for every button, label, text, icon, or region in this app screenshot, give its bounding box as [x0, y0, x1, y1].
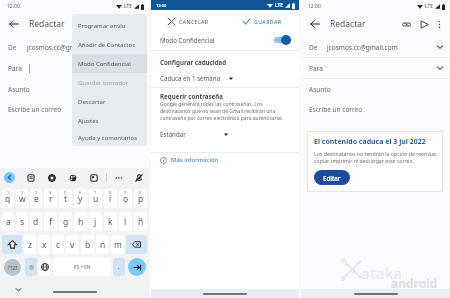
staticText: p [138, 193, 144, 205]
button[interactable]: p [134, 189, 147, 208]
button[interactable]: a [2, 212, 14, 231]
staticText: De [309, 43, 318, 52]
button[interactable]: Descartar [72, 92, 147, 111]
staticText: j [94, 216, 97, 228]
button[interactable]: Modo Confidencial [72, 54, 147, 73]
button[interactable]: t [59, 189, 72, 208]
button[interactable]: dots [113, 172, 125, 184]
button[interactable]: Modo Confidencial [151, 32, 299, 48]
button[interactable]: De [301, 37, 450, 57]
staticText: b [85, 239, 91, 251]
staticText: k [108, 216, 113, 228]
button[interactable]: Emoji [25, 258, 37, 276]
button[interactable]: Editar [314, 170, 350, 185]
button[interactable]: Para [0, 58, 149, 79]
staticText: Modo Confidencial [78, 60, 131, 68]
staticText: w [19, 193, 26, 205]
staticText: android [391, 275, 438, 291]
staticText: Escribe un correo [309, 105, 363, 114]
button[interactable]: e [30, 189, 42, 208]
button[interactable]: Comma [113, 258, 125, 276]
button[interactable]: mic [133, 172, 145, 184]
button[interactable]: u [89, 189, 102, 208]
button[interactable]: Ajustes [72, 111, 147, 130]
button[interactable]: Asunto [0, 79, 149, 100]
button[interactable]: Más información [151, 153, 219, 167]
button[interactable]: Ayuda y comentarios [72, 130, 147, 146]
button[interactable]: x [38, 235, 50, 254]
staticText: jcosmos.cc@gmail.com [327, 43, 398, 52]
button[interactable]: Estándar [151, 128, 299, 140]
button[interactable]: l [119, 212, 132, 231]
button[interactable]: b [81, 235, 94, 254]
button[interactable]: Space [53, 258, 111, 276]
staticText: LTE [425, 3, 433, 10]
staticText: s [20, 216, 25, 228]
button[interactable]: o [119, 189, 132, 208]
staticText: m [114, 239, 122, 251]
button[interactable]: Back [308, 17, 322, 31]
button[interactable]: Back [4, 172, 15, 183]
staticText: Ayuda y comentarios [78, 134, 138, 142]
button[interactable]: Enter [128, 258, 146, 276]
button[interactable]: Backspace [126, 235, 147, 254]
staticText: 8 [109, 190, 112, 195]
button[interactable]: Añadir de Contactos [72, 35, 147, 54]
button[interactable]: settings [46, 172, 58, 184]
button[interactable]: v [66, 235, 79, 254]
button[interactable]: n [96, 235, 109, 254]
button[interactable]: Para [301, 58, 450, 78]
staticText: y [78, 193, 83, 205]
staticText: g [63, 216, 69, 228]
button[interactable]: sticker [88, 172, 100, 184]
button[interactable]: palette [67, 172, 79, 184]
staticText: Caduca en 1 semana [160, 74, 221, 82]
staticText: 12:00 [308, 3, 321, 10]
button[interactable]: Back [7, 17, 21, 31]
button[interactable]: Asunto [301, 79, 450, 100]
button[interactable]: CANCELAR [151, 13, 225, 29]
button[interactable]: ñ [134, 212, 147, 231]
button[interactable]: z [24, 235, 36, 254]
button[interactable]: r [44, 189, 57, 208]
button[interactable]: Programar envío [72, 16, 147, 35]
button[interactable]: Caduca en 1 semana [151, 72, 299, 84]
staticText: ataka [361, 263, 403, 283]
button[interactable]: k [104, 212, 117, 231]
staticText: Configurar caducidad [160, 58, 227, 66]
button[interactable]: f [44, 212, 57, 231]
button[interactable]: gif [25, 172, 37, 184]
button[interactable]: De [0, 37, 149, 58]
button[interactable]: w [16, 189, 28, 208]
button[interactable]: GUARDAR [225, 13, 299, 29]
button[interactable]: Send [418, 18, 431, 31]
staticText: Estándar [160, 130, 186, 138]
button[interactable]: y [74, 189, 87, 208]
staticText: 1 [7, 190, 10, 195]
button[interactable]: Hide keyboard [13, 284, 23, 294]
staticText: l [124, 216, 127, 228]
button[interactable]: Shift [2, 235, 22, 254]
button[interactable]: ?123 [4, 259, 21, 276]
button[interactable]: i [104, 189, 117, 208]
button[interactable]: Attach file [400, 18, 413, 31]
staticText: 12:00 [156, 3, 167, 8]
button[interactable]: q [2, 189, 14, 208]
staticText: Ajustes [78, 117, 99, 125]
staticText: a [6, 216, 11, 228]
staticText: o [123, 193, 129, 205]
button[interactable]: j [89, 212, 102, 231]
staticText: Google generará todas las contraseñas. L… [160, 101, 292, 122]
button[interactable]: s [16, 212, 28, 231]
button[interactable]: More options [434, 19, 445, 30]
button[interactable]: g [59, 212, 72, 231]
staticText: ñ [138, 216, 144, 228]
button[interactable]: d [30, 212, 42, 231]
button[interactable]: c [52, 235, 64, 254]
button[interactable]: m [111, 235, 124, 254]
staticText: Redactar [330, 18, 366, 30]
staticText: Descartar [78, 98, 106, 106]
button[interactable]: Guardar borrador [72, 73, 147, 92]
button[interactable]: h [74, 212, 87, 231]
button[interactable]: Language [39, 258, 51, 276]
